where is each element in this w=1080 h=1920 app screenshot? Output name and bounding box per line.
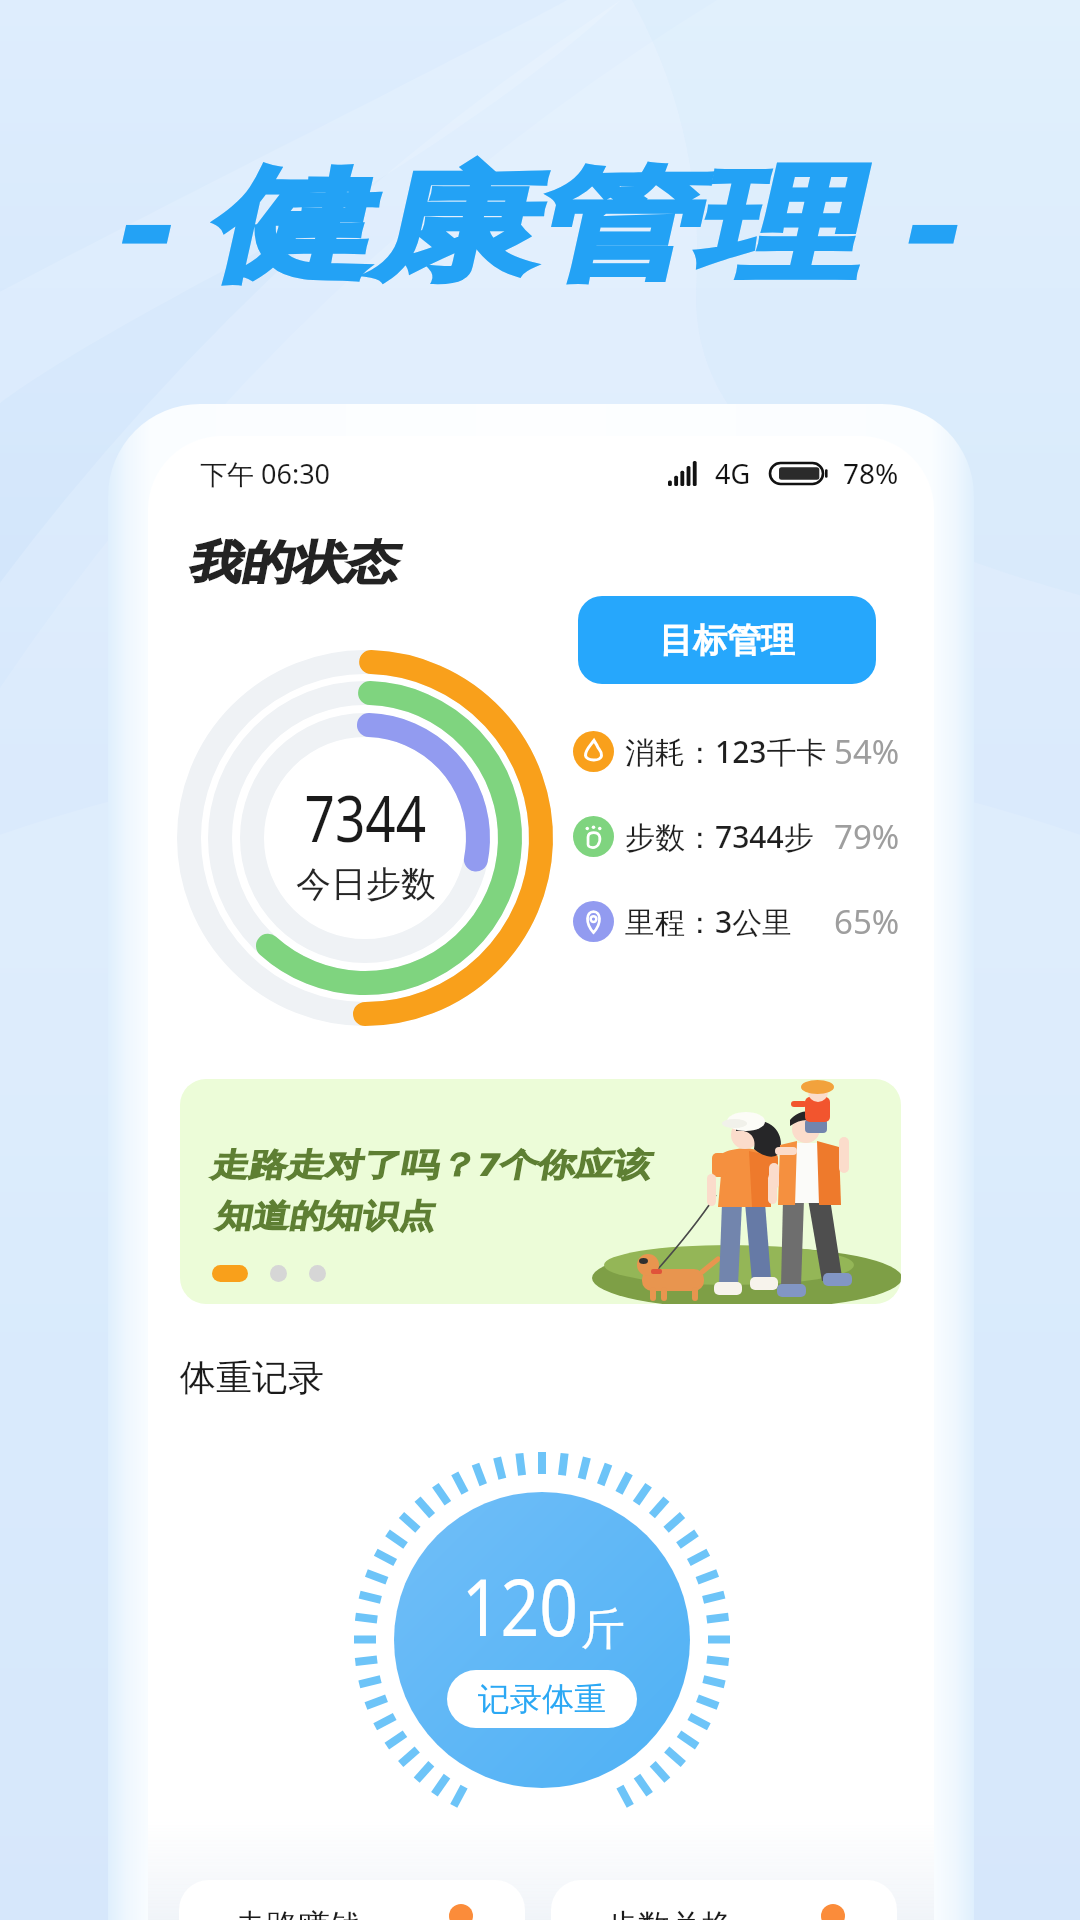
button[interactable]: 里程：3公里 (573, 893, 900, 949)
staticText: 斤 (581, 1602, 625, 1657)
staticText: 目标管理 (659, 619, 795, 662)
staticText: 65% (834, 899, 900, 944)
staticText: 步数：7344步 (625, 816, 814, 857)
staticText: 知道的知识点 (221, 1196, 439, 1236)
button[interactable]: 步数兑换 (551, 1880, 897, 1920)
staticText: 里程：3公里 (625, 901, 793, 942)
button[interactable]: 记录体重 (447, 1670, 637, 1728)
staticText: 7344 (304, 774, 426, 861)
staticText: 78% (843, 454, 899, 492)
staticText: 79% (834, 814, 900, 859)
staticText: 今日步数 (296, 862, 436, 906)
button[interactable]: 走路走对了吗？7个你应该 (180, 1079, 901, 1304)
other: Battery 78 percent (770, 463, 827, 484)
staticText: 走路赚钱 (234, 1906, 362, 1920)
button[interactable]: 消耗：123千卡 (573, 723, 900, 779)
button[interactable]: 步数：7344步 (573, 808, 900, 864)
button[interactable]: 120 (394, 1492, 690, 1788)
staticText: 走路走对了吗？7个你应该 (216, 1141, 657, 1185)
staticText: 下午 06:30 (200, 455, 331, 492)
staticText: 体重记录 (180, 1355, 324, 1400)
staticText: 记录体重 (478, 1679, 606, 1719)
staticText: 54% (834, 729, 900, 774)
staticText: 我的状态 (197, 535, 405, 592)
button[interactable]: 目标管理 (578, 596, 876, 684)
other: Signal strength (668, 461, 699, 486)
button[interactable]: 走路赚钱 (179, 1880, 525, 1920)
staticText: 120 (462, 1553, 578, 1659)
staticText: 步数兑换 (606, 1906, 734, 1920)
staticText: - 健康管理 - (143, 136, 981, 303)
staticText: 4G (715, 455, 751, 492)
staticText: 消耗：123千卡 (625, 731, 827, 772)
